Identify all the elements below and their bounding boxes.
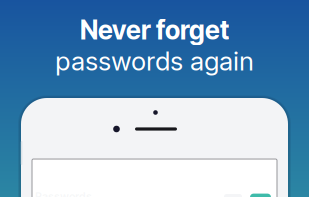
staticText: passwords again: [55, 45, 254, 77]
staticText: Never forget: [80, 14, 229, 46]
staticText: Passwords: [35, 190, 92, 197]
